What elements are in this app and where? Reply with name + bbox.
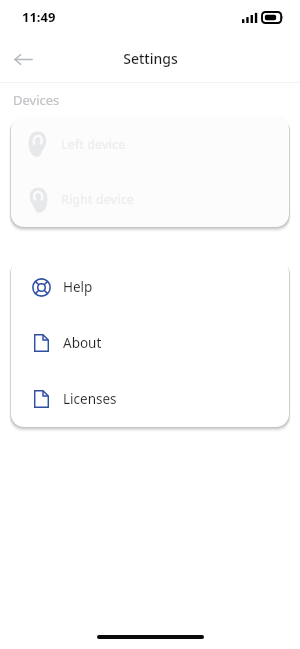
staticText: Settings <box>123 49 178 68</box>
staticText: Licenses <box>63 390 117 408</box>
button[interactable]: Help <box>11 259 289 315</box>
button[interactable]: Licenses <box>11 371 289 427</box>
button[interactable]: Back <box>3 39 43 79</box>
staticText: Help <box>63 278 93 296</box>
staticText: Devices <box>13 91 60 109</box>
staticText: Left device <box>61 136 126 153</box>
staticText: 11:49 <box>22 8 56 26</box>
button[interactable]: About <box>11 315 289 371</box>
staticText: About <box>63 334 102 352</box>
staticText: Right device <box>61 191 134 208</box>
button[interactable]: Right device <box>11 172 289 227</box>
button[interactable]: Left device <box>11 116 289 172</box>
